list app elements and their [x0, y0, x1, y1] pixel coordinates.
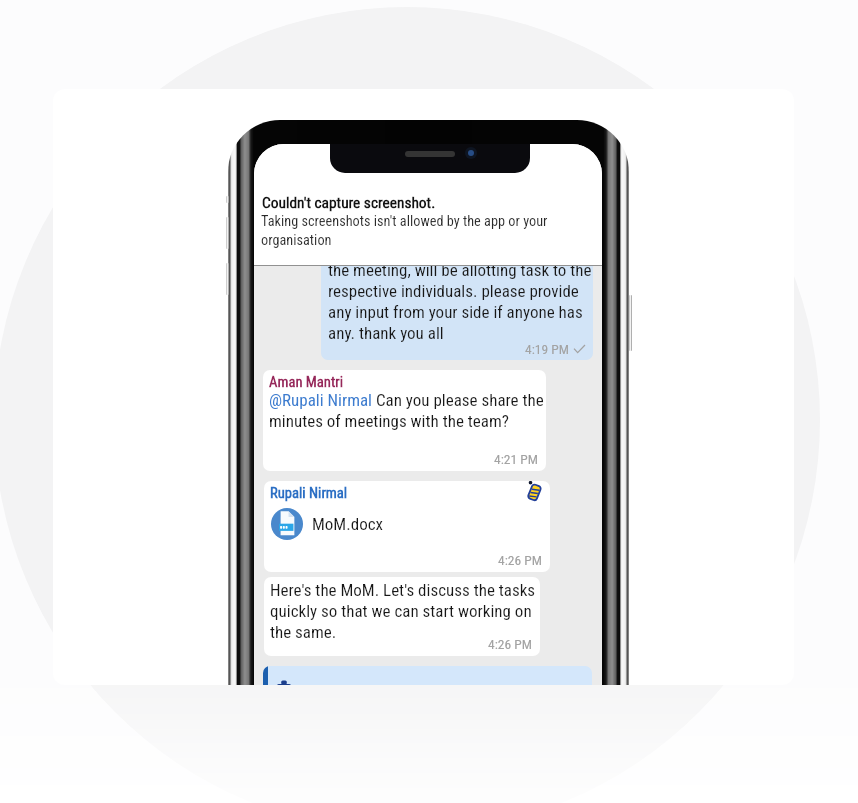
- staticText: MoM.docx: [312, 514, 383, 534]
- other: Word document: [271, 508, 303, 540]
- button[interactable]: [263, 666, 592, 685]
- staticText: 4:19 PM: [525, 341, 569, 357]
- other: Label: [522, 481, 546, 503]
- staticText: 4:26 PM: [498, 552, 542, 568]
- staticText: @Rupali Nirmal Can you please share the …: [269, 390, 545, 431]
- button[interactable]: Aman Mantri: [263, 370, 546, 471]
- staticText: Here's the MoM. Let's discuss the tasks …: [270, 580, 538, 642]
- button[interactable]: Rupali Nirmal: [264, 481, 550, 572]
- button[interactable]: Here's the MoM. Let's discuss the tasks …: [264, 577, 540, 656]
- staticText: Aman Mantri: [269, 373, 344, 390]
- staticText: Taking screenshots isn't allowed by the …: [261, 213, 561, 248]
- staticText: the meeting, will be allotting task to t…: [328, 266, 593, 343]
- staticText: Couldn't capture screenshot.: [262, 194, 436, 212]
- staticText: 4:26 PM: [488, 636, 532, 652]
- button[interactable]: the meeting, will be allotting task to t…: [321, 266, 593, 360]
- staticText: Rupali Nirmal: [270, 484, 348, 501]
- staticText: 4:21 PM: [494, 451, 538, 467]
